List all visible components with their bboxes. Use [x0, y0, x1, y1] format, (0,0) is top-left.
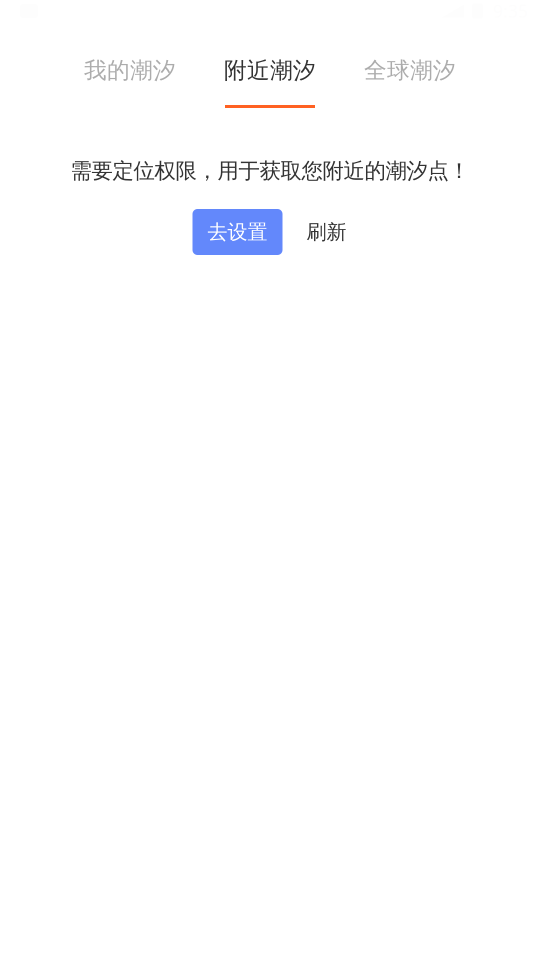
- button[interactable]: 去设置: [192, 209, 282, 255]
- staticText: 去设置: [207, 220, 267, 244]
- staticText: 全球潮汐: [364, 57, 456, 84]
- button[interactable]: 附近潮汐: [224, 22, 316, 112]
- button[interactable]: 我的潮汐: [84, 22, 176, 112]
- button[interactable]: 刷新: [305, 209, 347, 255]
- staticText: 附近潮汐: [224, 57, 316, 84]
- staticText: 需要定位权限，用于获取您附近的潮汐点！: [70, 158, 469, 184]
- button[interactable]: 全球潮汐: [364, 22, 456, 112]
- staticText: 刷新: [306, 220, 346, 244]
- staticText: 我的潮汐: [84, 57, 176, 84]
